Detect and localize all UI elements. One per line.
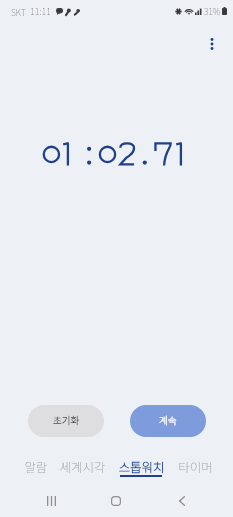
staticText: 세계시각 — [59, 457, 106, 475]
button[interactable]: 세계시각 — [55, 452, 109, 484]
button[interactable]: 알람 — [12, 452, 59, 484]
button[interactable]: Back — [168, 487, 196, 515]
button[interactable]: 계속 — [130, 405, 206, 437]
button[interactable]: More options — [198, 30, 226, 58]
staticText: 스톱워치 — [118, 457, 165, 475]
staticText: 초기화 — [53, 413, 80, 427]
staticText: 타이머 — [178, 457, 213, 475]
staticText: 계속 — [159, 413, 177, 427]
button[interactable]: 타이머 — [171, 452, 219, 484]
button[interactable]: 스톱워치 — [114, 452, 168, 484]
button[interactable]: Home — [102, 487, 130, 515]
staticText: 31% — [204, 5, 221, 17]
staticText: 알람 — [24, 457, 48, 475]
staticText: SKT — [11, 6, 26, 18]
staticText: 11:11 — [30, 5, 51, 18]
button[interactable]: 초기화 — [28, 405, 104, 437]
button[interactable]: Recents — [37, 487, 65, 515]
